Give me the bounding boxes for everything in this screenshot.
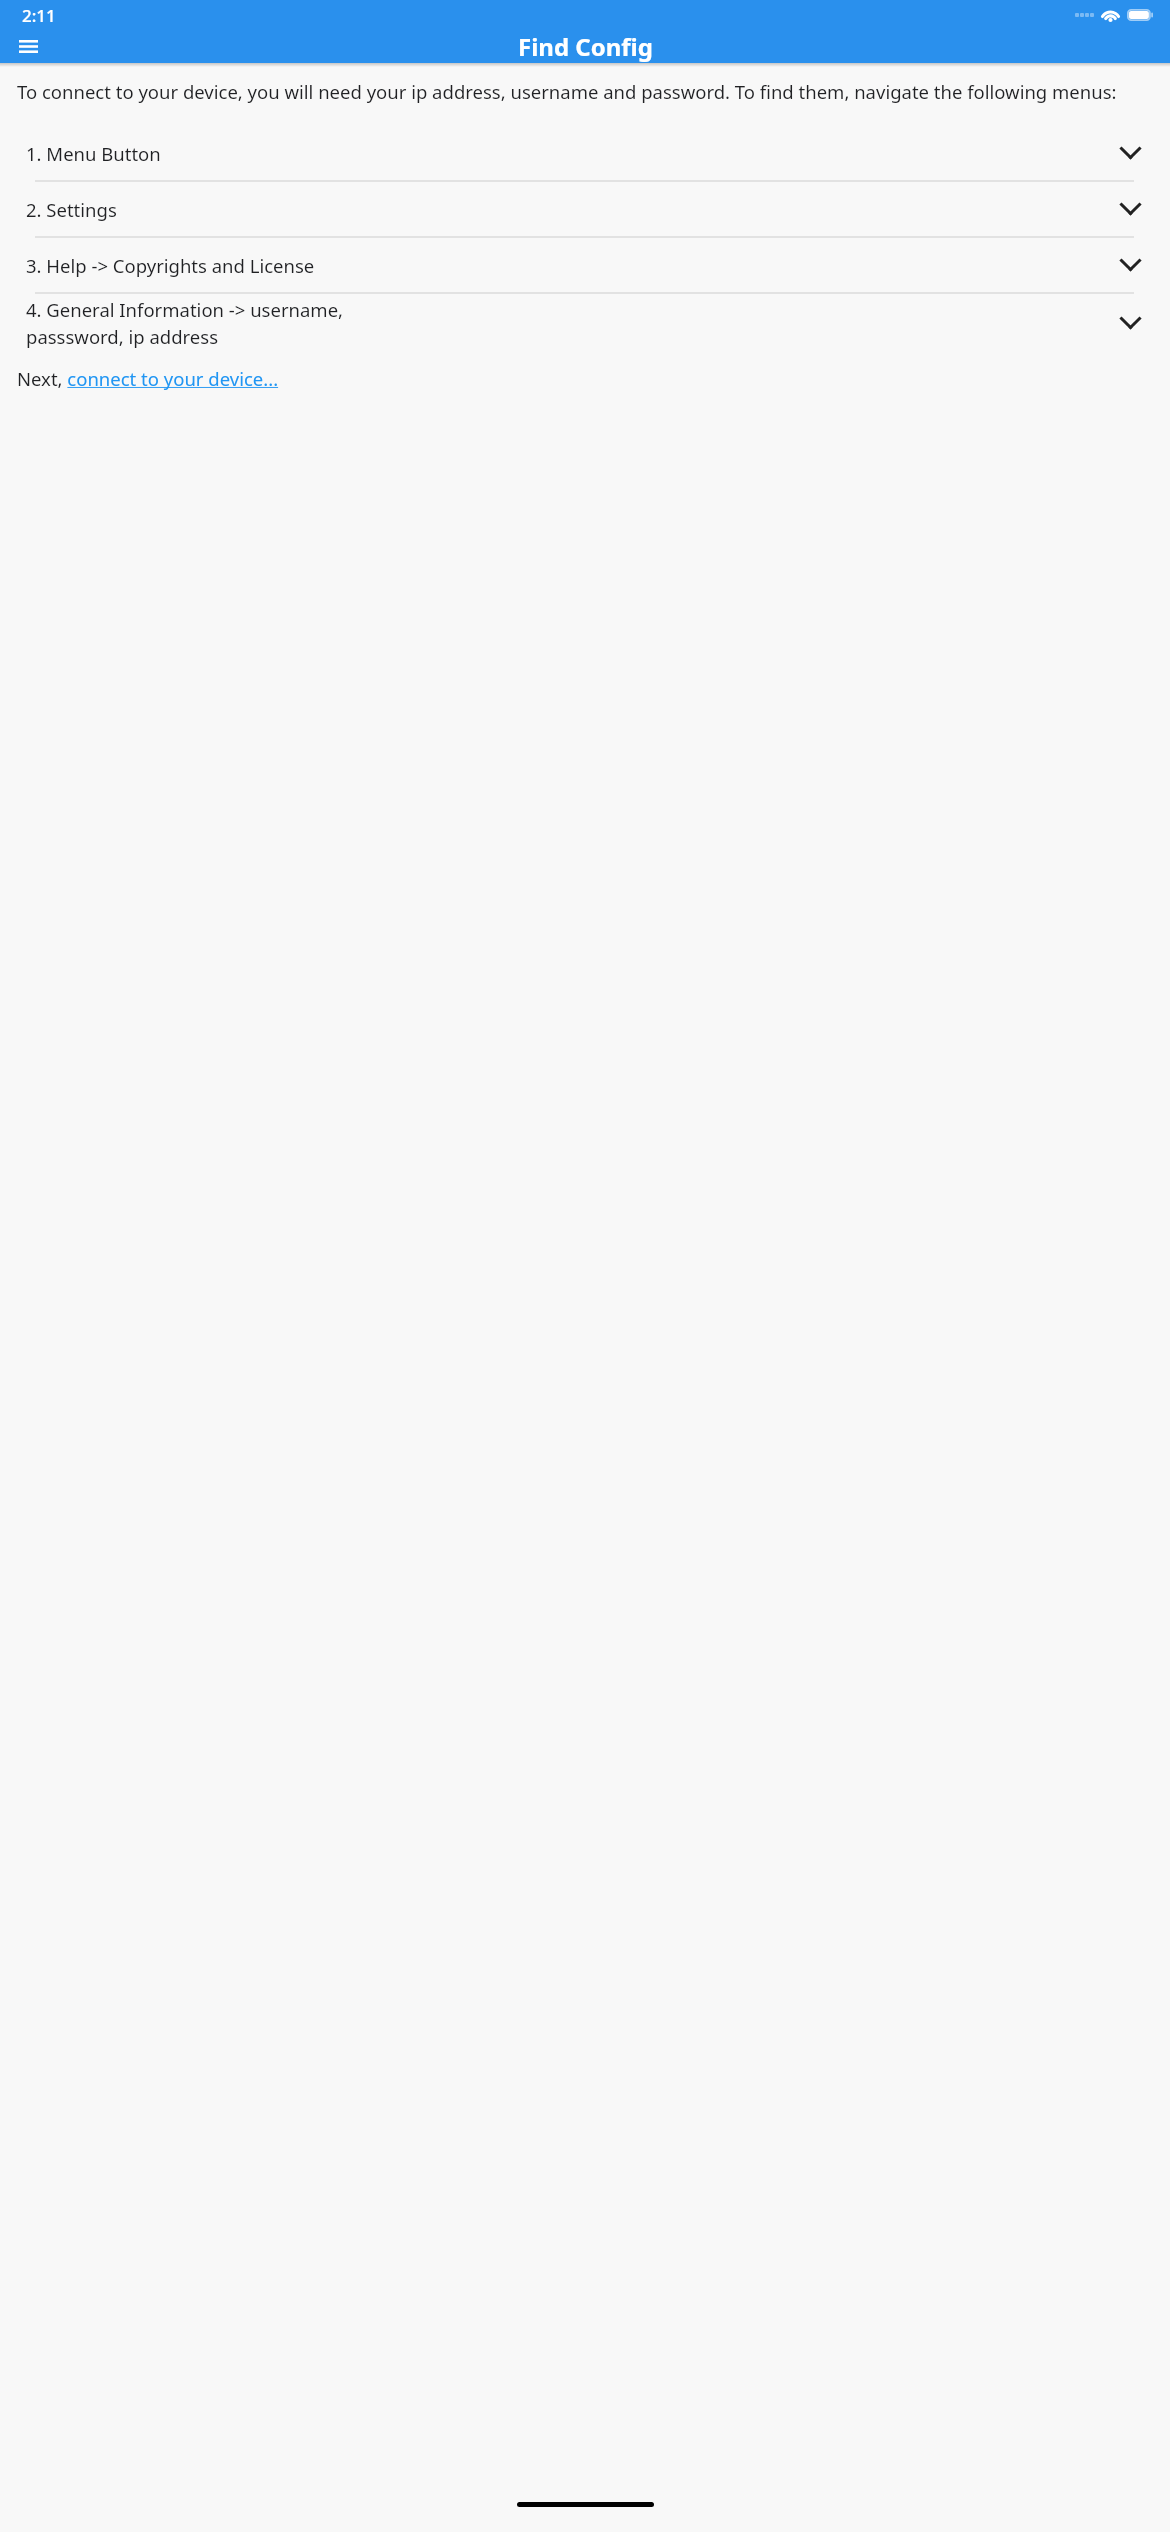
- staticText: 2. Settings: [26, 197, 1120, 222]
- staticText: Next, connect to your device...: [17, 366, 279, 391]
- staticText: Find Config: [518, 30, 653, 63]
- button[interactable]: 2. Settings: [0, 182, 1170, 236]
- staticText: 4. General Information -> username, pass…: [26, 297, 1120, 350]
- staticText: To connect to your device, you will need…: [17, 79, 1148, 104]
- button[interactable]: 4. General Information -> username, pass…: [0, 294, 1170, 352]
- staticText: 3. Help -> Copyrights and License: [26, 253, 1120, 278]
- staticText: 1. Menu Button: [26, 141, 1120, 166]
- button[interactable]: Open navigation menu: [10, 30, 46, 63]
- button[interactable]: 3. Help -> Copyrights and License: [0, 238, 1170, 292]
- staticText: 2:11: [22, 4, 56, 27]
- button[interactable]: Next, connect to your device...: [0, 362, 1170, 395]
- button[interactable]: 1. Menu Button: [0, 126, 1170, 180]
